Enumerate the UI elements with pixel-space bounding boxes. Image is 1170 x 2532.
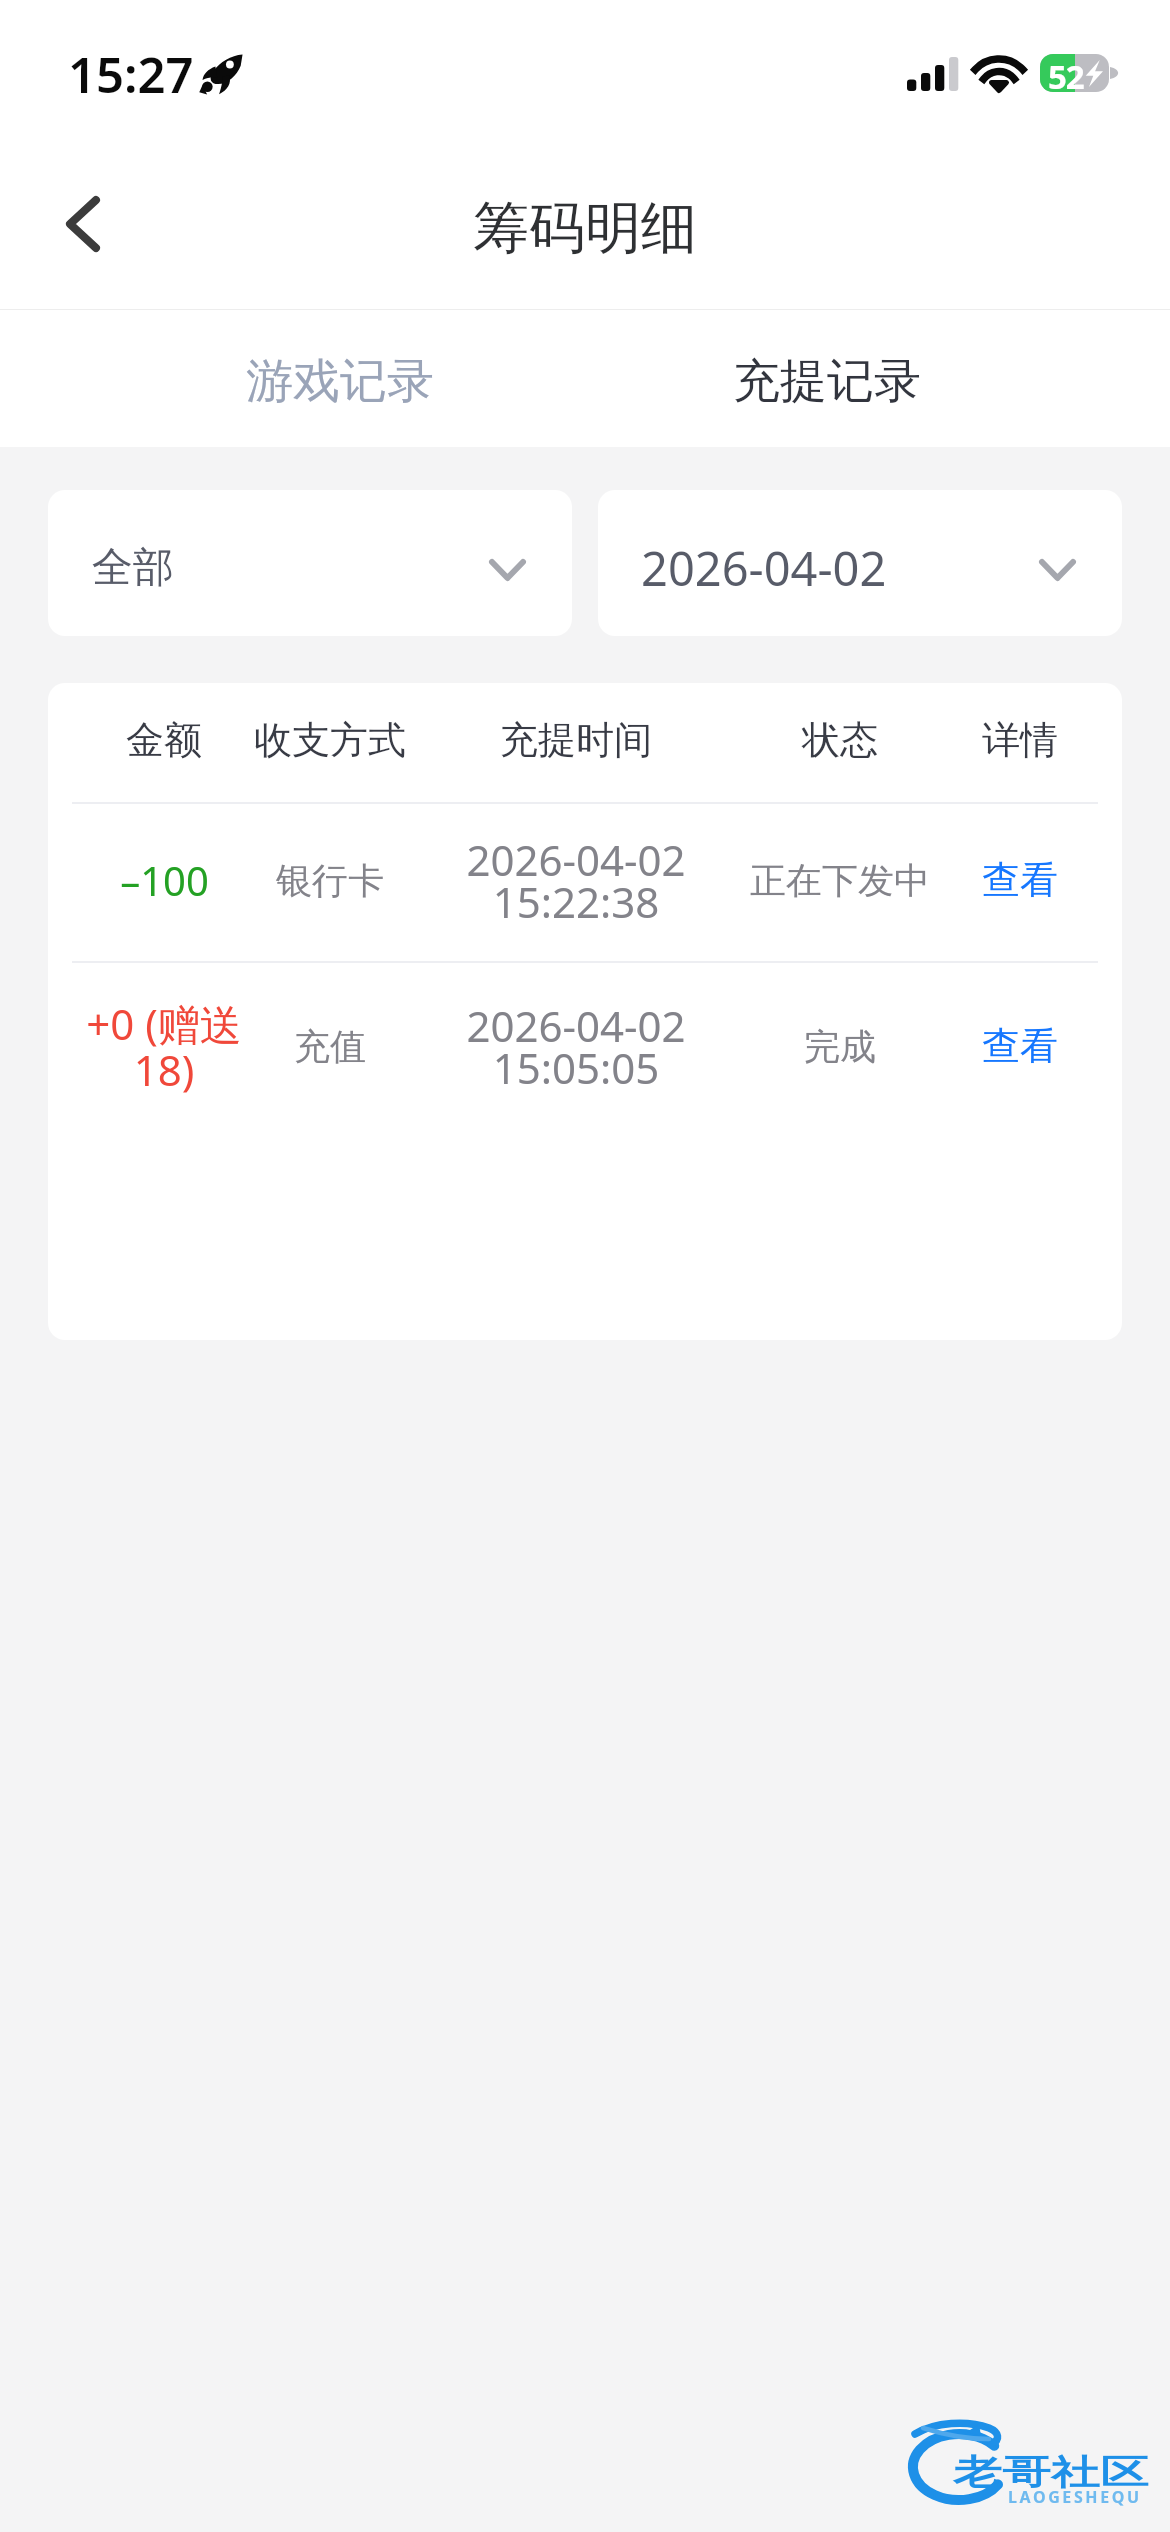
staticText: 游戏记录 (246, 352, 434, 411)
staticText: –100 (120, 853, 209, 907)
staticText: 52 (1048, 54, 1084, 92)
staticText: 银行卡 (276, 858, 384, 903)
staticText: 老哥社区 (953, 2451, 1149, 2495)
staticText: 充提时间 (500, 716, 652, 764)
staticText: 全部 (92, 542, 174, 594)
button[interactable]: 2026-04-02 (598, 490, 1122, 636)
button[interactable]: Back (23, 168, 143, 280)
staticText: 15:27 (68, 41, 194, 108)
staticText: 2026-04-02 15:22:38 (466, 831, 686, 930)
staticText: 正在下发中 (750, 858, 930, 903)
staticText: 2026-04-02 15:05:05 (466, 997, 686, 1096)
staticText: 查看 (982, 856, 1058, 904)
button[interactable]: 查看 (940, 984, 1100, 1108)
button[interactable]: 全部 (48, 490, 572, 636)
staticText: 金额 (126, 716, 202, 764)
button[interactable]: 游戏记录 (170, 313, 510, 450)
staticText: 状态 (802, 716, 878, 764)
staticText: +0 (赠送18) (75, 995, 253, 1098)
staticText: 收支方式 (254, 716, 406, 764)
button[interactable]: 查看 (940, 818, 1100, 942)
staticText: 查看 (982, 1022, 1058, 1070)
staticText: 充提记录 (733, 352, 921, 411)
staticText: LAOGESHEQU (1008, 2486, 1142, 2508)
staticText: 详情 (982, 716, 1058, 764)
staticText: 完成 (804, 1024, 876, 1069)
staticText: 充值 (294, 1024, 366, 1069)
button[interactable]: 充提记录 (657, 313, 997, 450)
staticText: 2026-04-02 (641, 536, 887, 600)
staticText: 筹码明细 (473, 193, 697, 264)
